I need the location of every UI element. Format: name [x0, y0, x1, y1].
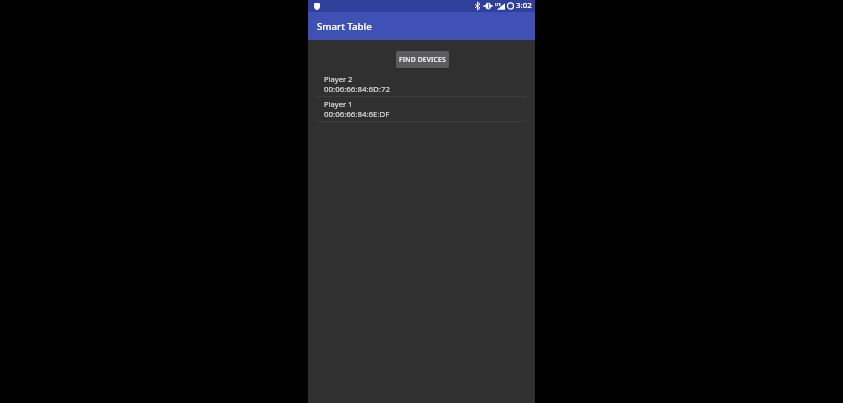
other: Battery — [507, 2, 514, 10]
other: VPN active — [314, 3, 320, 10]
staticText: Player 1 — [324, 99, 353, 109]
other: Ringer mode — [483, 2, 493, 10]
staticText: FIND DEVICES — [399, 55, 446, 64]
button[interactable]: Player 1 — [308, 97, 535, 122]
button[interactable]: Player 2 — [308, 72, 535, 97]
other: LTE signal — [495, 2, 505, 10]
staticText: Smart Table — [317, 20, 372, 33]
other: Bluetooth on — [475, 2, 480, 10]
staticText: 3:02 — [516, 0, 532, 11]
staticText: Player 2 — [324, 74, 353, 84]
staticText: LTE — [495, 2, 501, 7]
staticText: 00:06:66:84:6E:DF — [324, 109, 390, 120]
button[interactable]: FIND DEVICES — [396, 51, 449, 68]
staticText: 00:06:66:84:6D:72 — [324, 84, 390, 95]
